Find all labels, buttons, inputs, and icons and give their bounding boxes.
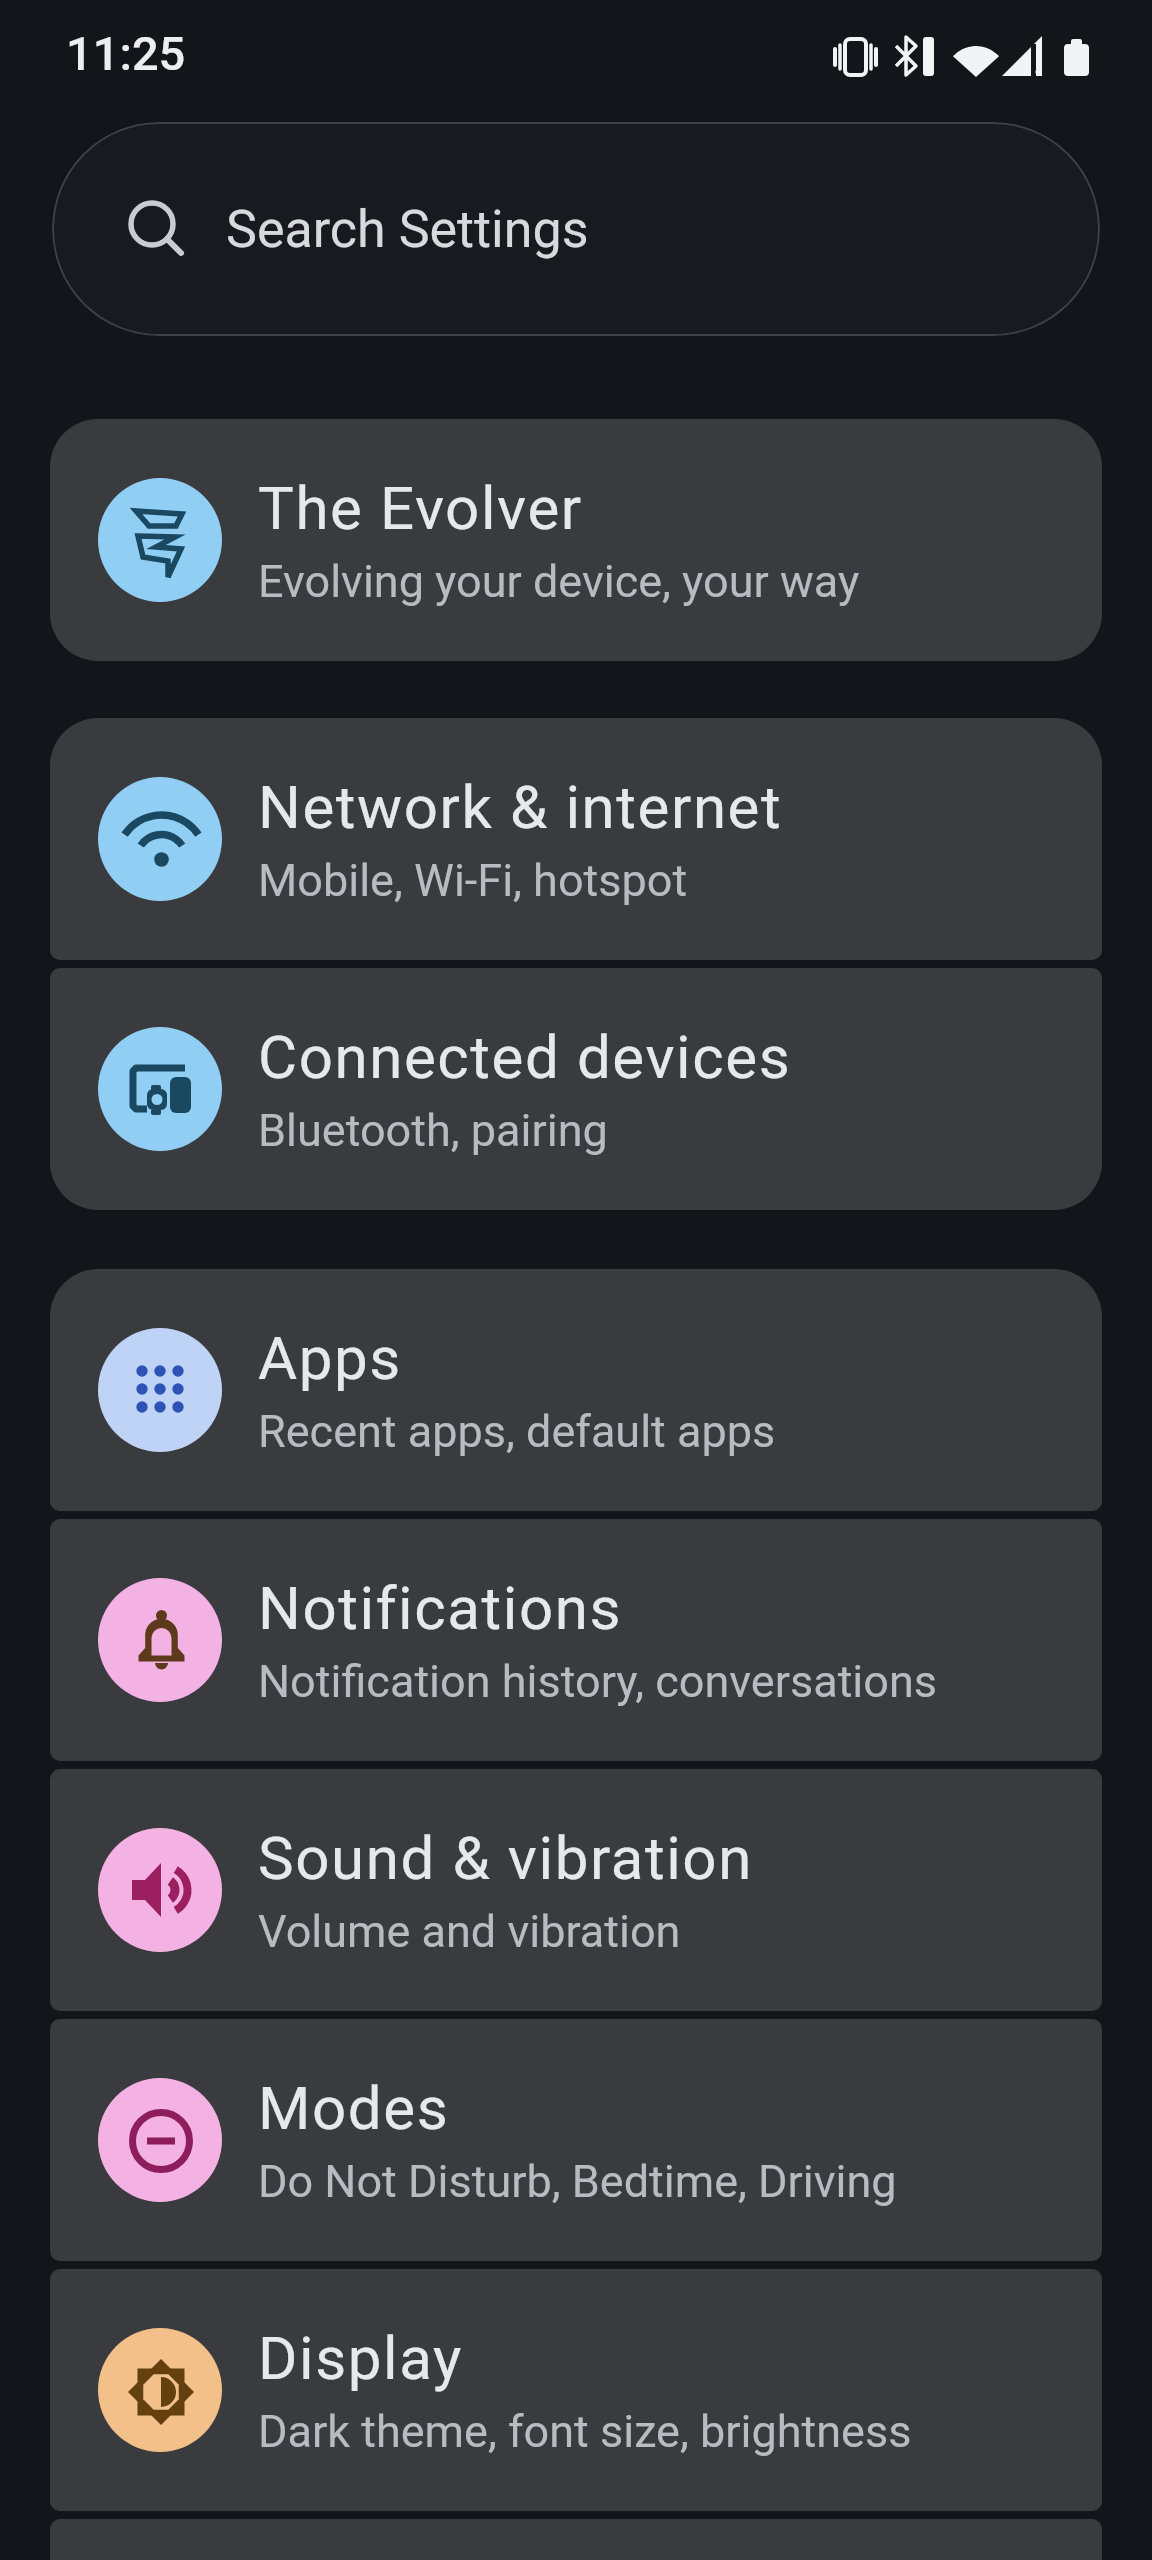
button[interactable]: Notifications [50, 1519, 1102, 1761]
staticText: Connected devices [258, 1022, 792, 1092]
staticText: Notifications [258, 1573, 623, 1643]
staticText: Notification history, conversations [258, 1655, 938, 1708]
button[interactable]: Display [50, 2269, 1102, 2511]
staticText: Apps [258, 1323, 402, 1393]
staticText: Recent apps, default apps [258, 1405, 776, 1458]
button[interactable]: Network & internet [50, 718, 1102, 960]
staticText: Evolving your device, your way [258, 555, 860, 608]
button[interactable]: Apps [50, 1269, 1102, 1511]
button[interactable]: Modes [50, 2019, 1102, 2261]
button[interactable]: Sound & vibration [50, 1769, 1102, 2011]
staticText: Volume and vibration [258, 1905, 681, 1958]
staticText: Modes [258, 2073, 450, 2143]
button[interactable]: The Evolver [50, 419, 1102, 661]
staticText: Search Settings [226, 199, 589, 260]
button[interactable]: Search Settings [52, 122, 1100, 336]
button[interactable]: Connected devices [50, 968, 1102, 1210]
staticText: Sound & vibration [258, 1823, 753, 1893]
staticText: Dark theme, font size, brightness [258, 2405, 912, 2458]
staticText: Network & internet [258, 772, 783, 842]
staticText: Do Not Disturb, Bedtime, Driving [258, 2155, 897, 2208]
staticText: Display [258, 2323, 463, 2393]
staticText: 11:25 [66, 26, 186, 81]
staticText: The Evolver [258, 473, 583, 543]
staticText: Mobile, Wi-Fi, hotspot [258, 854, 688, 907]
staticText: Bluetooth, pairing [258, 1104, 608, 1157]
